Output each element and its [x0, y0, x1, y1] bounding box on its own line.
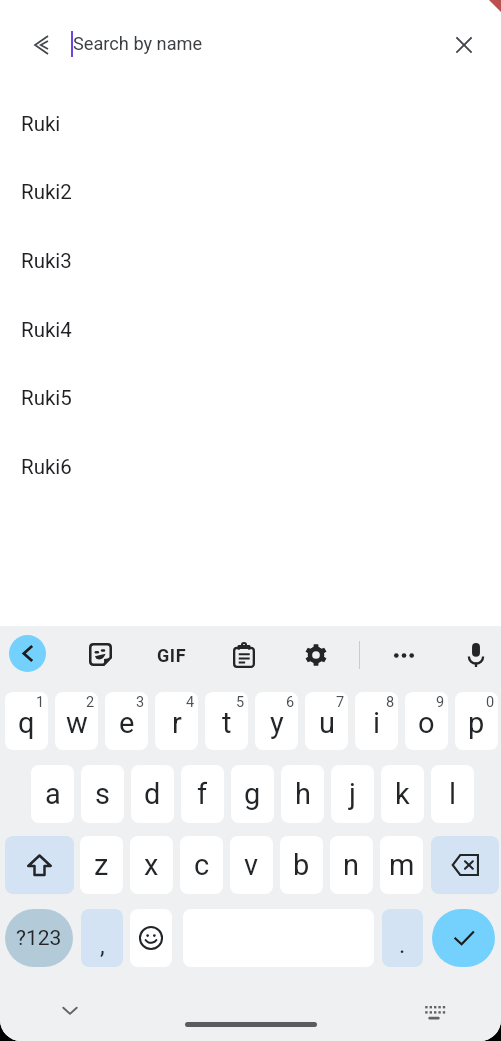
button[interactable]: d — [131, 765, 174, 823]
staticText: r — [172, 706, 182, 740]
staticText: 2 — [86, 694, 95, 711]
staticText: b — [293, 848, 310, 882]
button[interactable]: Clear search — [445, 26, 482, 63]
button[interactable]: Shift — [5, 836, 74, 894]
button[interactable]: a — [31, 765, 74, 823]
staticText: 7 — [336, 694, 345, 711]
button[interactable]: w — [55, 692, 98, 750]
button[interactable]: y — [255, 692, 298, 750]
staticText: n — [343, 848, 360, 882]
staticText: 6 — [286, 694, 295, 711]
staticText: i — [373, 706, 381, 740]
staticText: o — [418, 706, 435, 740]
staticText: m — [389, 848, 415, 882]
staticText: f — [197, 777, 208, 811]
button[interactable]: x — [130, 836, 173, 894]
staticText: 8 — [386, 694, 395, 711]
staticText: q — [18, 706, 35, 740]
button[interactable]: More options — [394, 651, 414, 660]
button[interactable]: t — [205, 692, 248, 750]
staticText: 1 — [36, 694, 45, 711]
button[interactable]: Period — [382, 909, 423, 967]
staticText: 5 — [236, 694, 245, 711]
staticText: Ruki2 — [21, 180, 72, 204]
button[interactable]: m — [380, 836, 423, 894]
staticText: Ruki5 — [21, 386, 72, 410]
button[interactable]: u — [305, 692, 348, 750]
button[interactable]: b — [280, 836, 323, 894]
button[interactable]: Change keyboard — [418, 996, 450, 1028]
button[interactable]: Comma — [81, 909, 123, 967]
staticText: Search by name — [73, 33, 203, 54]
button[interactable]: e — [105, 692, 148, 750]
staticText: , — [100, 932, 105, 960]
staticText: GIF — [157, 645, 187, 666]
staticText: x — [144, 848, 159, 882]
button[interactable]: h — [281, 765, 324, 823]
button[interactable]: ?123 — [5, 909, 73, 967]
button[interactable]: Back — [24, 28, 58, 62]
staticText: j — [349, 777, 356, 811]
staticText: d — [144, 777, 161, 811]
button[interactable]: z — [80, 836, 123, 894]
staticText: Ruki4 — [21, 318, 72, 342]
button[interactable]: Back — [9, 635, 46, 672]
button[interactable]: Clipboard — [233, 643, 255, 668]
button[interactable]: Ruki3 — [0, 227, 501, 295]
button[interactable]: Settings — [305, 644, 327, 666]
staticText: a — [45, 777, 61, 811]
button[interactable]: i — [355, 692, 398, 750]
staticText: t — [222, 706, 232, 740]
button[interactable]: v — [230, 836, 273, 894]
button[interactable]: r — [155, 692, 198, 750]
staticText: z — [94, 848, 109, 882]
button[interactable]: Backspace — [431, 836, 499, 894]
button[interactable]: g — [231, 765, 274, 823]
staticText: y — [270, 706, 284, 740]
button[interactable]: Stickers — [89, 643, 112, 666]
staticText: 0 — [486, 694, 495, 711]
staticText: Ruki — [21, 112, 61, 136]
button[interactable]: l — [431, 765, 474, 823]
button[interactable]: Voice input — [467, 643, 485, 667]
staticText: 4 — [186, 694, 195, 711]
button[interactable]: Emoji — [130, 909, 172, 967]
staticText: h — [295, 777, 311, 811]
button[interactable]: Ruki5 — [0, 364, 501, 432]
button[interactable]: Ruki — [0, 90, 501, 158]
button[interactable]: Enter — [432, 909, 495, 967]
staticText: 3 — [136, 694, 145, 711]
staticText: Ruki6 — [21, 455, 72, 479]
staticText: e — [119, 706, 135, 740]
staticText: k — [395, 777, 410, 811]
button[interactable]: f — [181, 765, 224, 823]
staticText: l — [449, 777, 457, 811]
button[interactable]: o — [405, 692, 448, 750]
button[interactable]: GIF — [150, 640, 194, 670]
button[interactable]: Ruki2 — [0, 158, 501, 226]
staticText: Ruki3 — [21, 249, 72, 273]
button[interactable]: j — [331, 765, 374, 823]
button[interactable]: Ruki6 — [0, 433, 501, 501]
staticText: u — [319, 706, 335, 740]
button[interactable]: p — [455, 692, 498, 750]
staticText: p — [468, 706, 485, 740]
button[interactable]: c — [180, 836, 223, 894]
button[interactable]: q — [5, 692, 48, 750]
button[interactable]: Ruki4 — [0, 296, 501, 364]
button[interactable]: s — [81, 765, 124, 823]
staticText: 9 — [436, 694, 445, 711]
button[interactable]: n — [330, 836, 373, 894]
staticText: s — [95, 777, 110, 811]
button[interactable]: k — [381, 765, 424, 823]
staticText: v — [244, 848, 259, 882]
button[interactable]: Hide keyboard — [56, 996, 84, 1024]
staticText: . — [399, 931, 406, 959]
staticText: w — [66, 706, 88, 740]
staticText: g — [244, 777, 261, 811]
staticText: c — [194, 848, 210, 882]
staticText: ?123 — [16, 926, 62, 951]
